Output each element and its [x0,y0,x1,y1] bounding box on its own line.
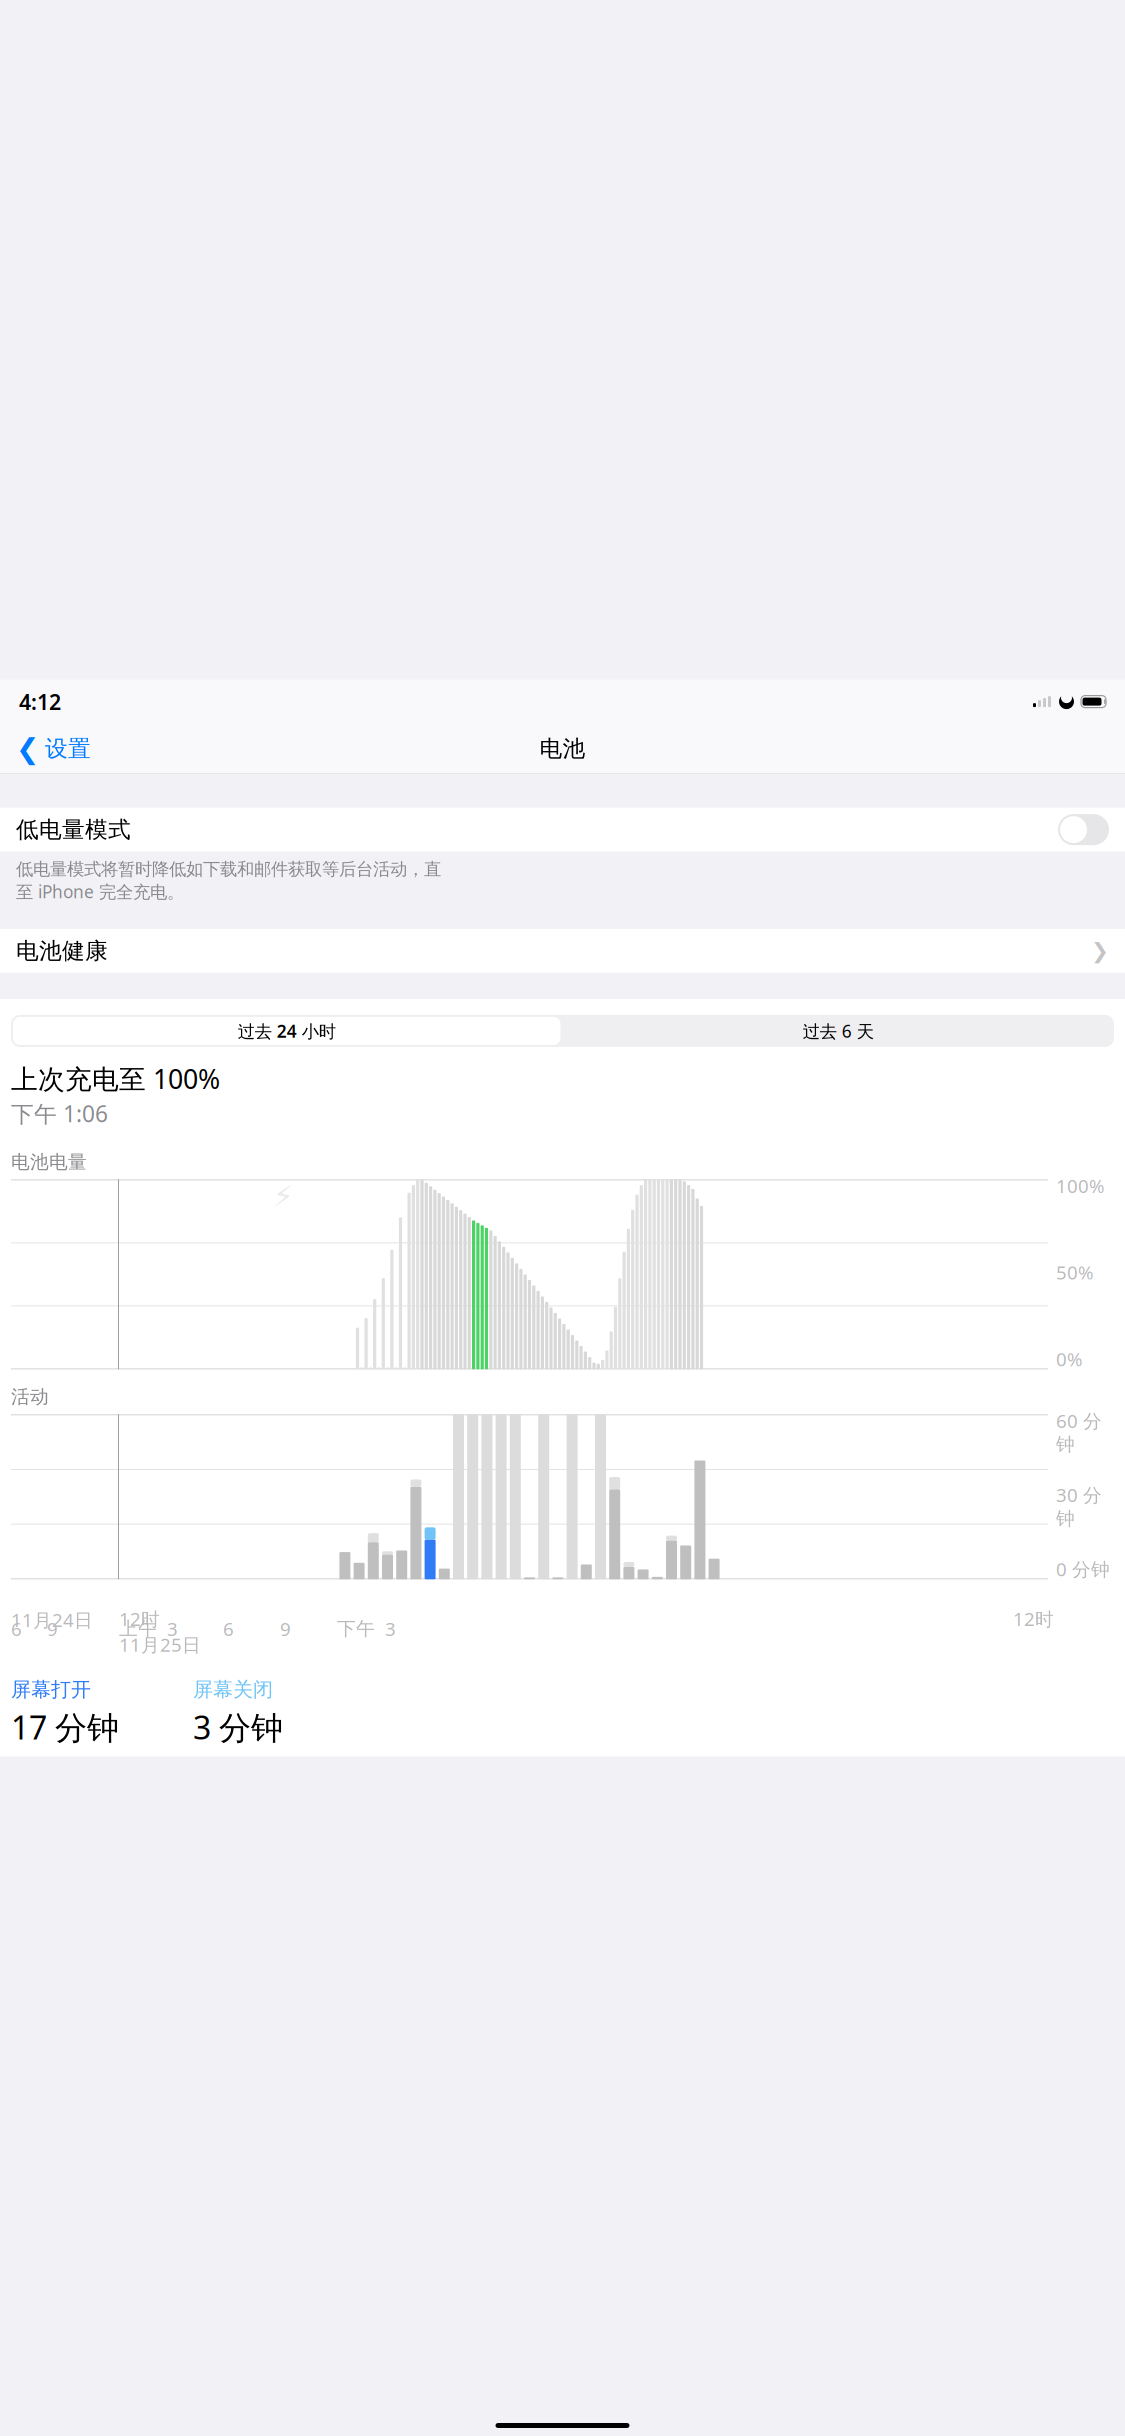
staticText: 0 分钟 [1056,1556,1110,1581]
staticText: 低电量模式将暂时降低如下载和邮件获取等后台活动，直 [16,859,441,880]
staticText: 低电量模式 [16,816,131,843]
staticText: 30 分钟 [1056,1482,1102,1530]
staticText: 9 [280,1616,291,1641]
button[interactable]: 低电量模式 [0,808,1125,852]
staticText: 3 [167,1616,178,1641]
staticText: 12时 [119,1606,160,1631]
staticText: 4:12 [19,687,61,716]
staticText: 上午 [119,1617,157,1640]
staticText: 屏幕打开 [11,1677,91,1702]
staticText: 6 [11,1616,22,1641]
staticText: 3 分钟 [193,1706,283,1748]
staticText: 下午 1:06 [11,1098,108,1128]
button[interactable]: 电池健康 [0,929,1125,973]
button[interactable]: ❮ [8,727,91,770]
staticText: ❯ [1091,939,1109,963]
staticText: 11月25日 [119,1632,201,1657]
staticText: ⚡︎ [273,1179,294,1213]
staticText: 至 iPhone 完全充电。 [16,880,184,903]
staticText: 6 [223,1616,234,1641]
staticText: 17 分钟 [11,1706,119,1748]
staticText: 50% [1056,1260,1094,1285]
staticText: 屏幕关闭 [193,1677,273,1702]
staticText: 0% [1056,1347,1083,1371]
staticText: 100% [1056,1173,1105,1198]
staticText: 3 [385,1616,396,1641]
staticText: 9 [47,1616,58,1641]
staticText: 上次充电至 100% [11,1061,220,1096]
staticText: 60 分钟 [1056,1408,1102,1456]
staticText: ❮ [16,733,39,764]
staticText: 电池电量 [11,1150,87,1173]
staticText: 电池健康 [16,937,108,965]
staticText: 下午 [337,1617,375,1640]
staticText: 12时 [1013,1606,1054,1631]
staticText: 11月24日 [11,1607,93,1632]
staticText: 过去 6 天 [803,1019,874,1042]
button[interactable]: 过去 6 天 [562,1015,1114,1047]
staticText: 设置 [45,735,91,762]
staticText: 电池 [539,735,585,762]
button[interactable]: 过去 24 小时 [11,1015,562,1047]
staticText: 过去 24 小时 [238,1019,336,1042]
staticText: 活动 [11,1385,49,1408]
